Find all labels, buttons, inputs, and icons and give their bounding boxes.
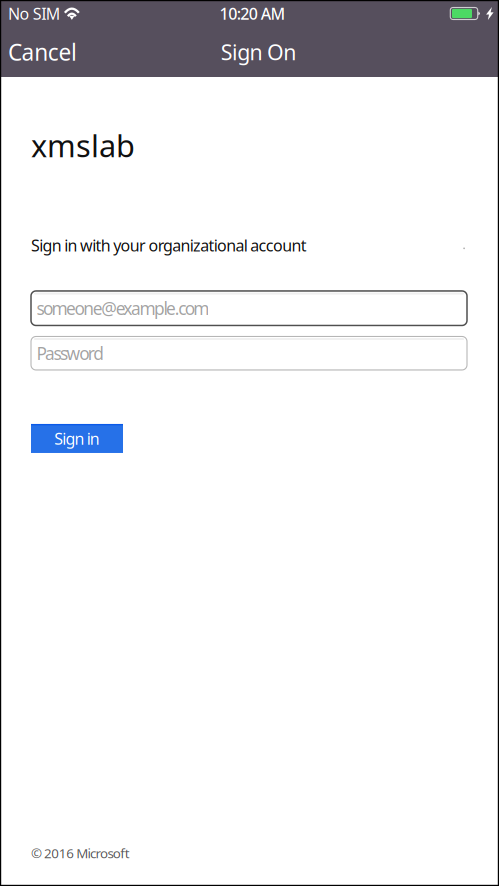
staticText: Password (36, 342, 104, 365)
button[interactable]: Password (31, 336, 467, 370)
button[interactable]: Sign in (31, 424, 123, 453)
staticText: Sign in (54, 428, 100, 449)
staticText: xmslab (31, 125, 135, 166)
staticText: Cancel (8, 37, 77, 67)
staticText: Sign in with your organizational account (31, 235, 307, 256)
staticText: Sign On (221, 38, 296, 66)
staticText: No SIM (8, 3, 61, 24)
staticText: 10:20 AM (220, 3, 285, 24)
staticText: © 2016 Microsoft (31, 844, 130, 862)
button[interactable]: Cancel (0, 30, 85, 74)
staticText: someone@example.com (36, 297, 209, 320)
button[interactable]: someone@example.com (31, 291, 467, 325)
